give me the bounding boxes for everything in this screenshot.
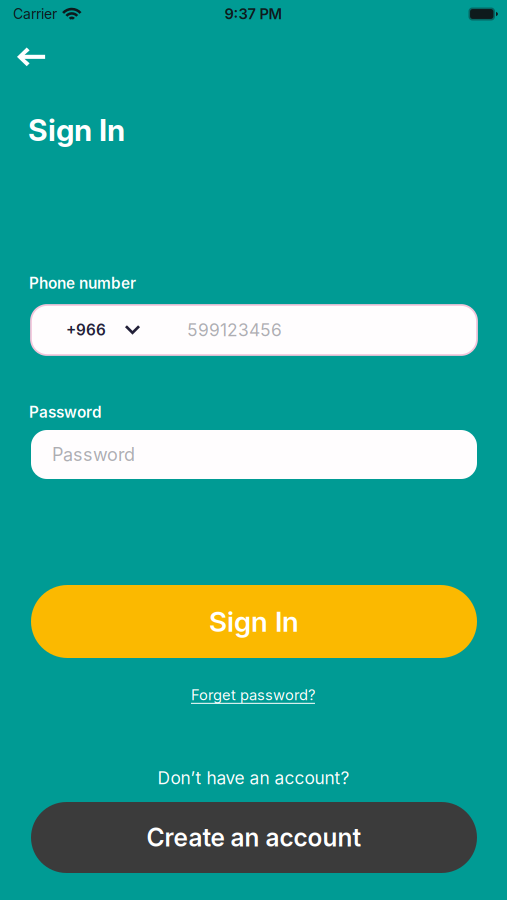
button[interactable]: Password (31, 430, 477, 479)
staticText: Password (29, 403, 102, 422)
staticText: Sign In (28, 112, 125, 148)
button[interactable]: Forget password? (173, 681, 333, 709)
staticText: Carrier (13, 5, 57, 22)
staticText: Forget password? (191, 686, 315, 704)
staticText: Create an account (146, 823, 361, 852)
staticText: Password (52, 444, 135, 465)
button[interactable]: Create an account (31, 802, 477, 873)
staticText: 9:37 PM (224, 5, 282, 23)
staticText: Don’t have an account? (157, 767, 349, 788)
staticText: +966 (66, 321, 106, 339)
button[interactable]: Sign In (31, 585, 477, 658)
staticText: 599123456 (187, 319, 282, 340)
button[interactable]: Back (1, 35, 61, 79)
staticText: Sign In (209, 605, 299, 638)
staticText: Phone number (29, 274, 136, 293)
button[interactable]: +966 (31, 305, 477, 355)
